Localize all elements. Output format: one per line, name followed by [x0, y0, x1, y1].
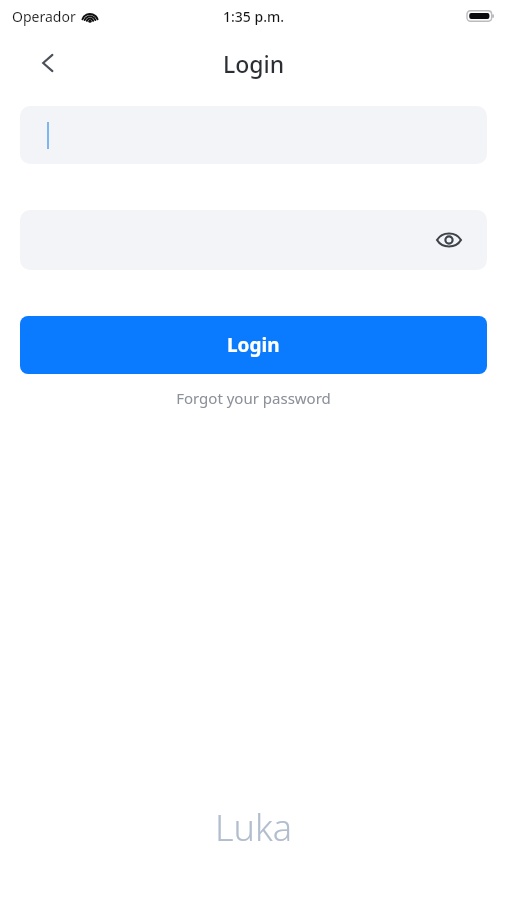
staticText: Operador: [12, 7, 76, 26]
button[interactable]: Password field: [20, 210, 487, 270]
staticText: 1:35 p.m.: [223, 7, 285, 26]
staticText: Luka: [215, 803, 293, 852]
button[interactable]: Show password: [429, 220, 469, 260]
staticText: Forgot your password: [176, 388, 331, 408]
button[interactable]: Back: [24, 39, 72, 87]
staticText: Login: [227, 332, 280, 358]
button[interactable]: Forgot your password: [0, 388, 507, 408]
button[interactable]: Username field: [20, 106, 487, 164]
button[interactable]: Login: [20, 316, 487, 374]
staticText: Login: [223, 48, 285, 79]
